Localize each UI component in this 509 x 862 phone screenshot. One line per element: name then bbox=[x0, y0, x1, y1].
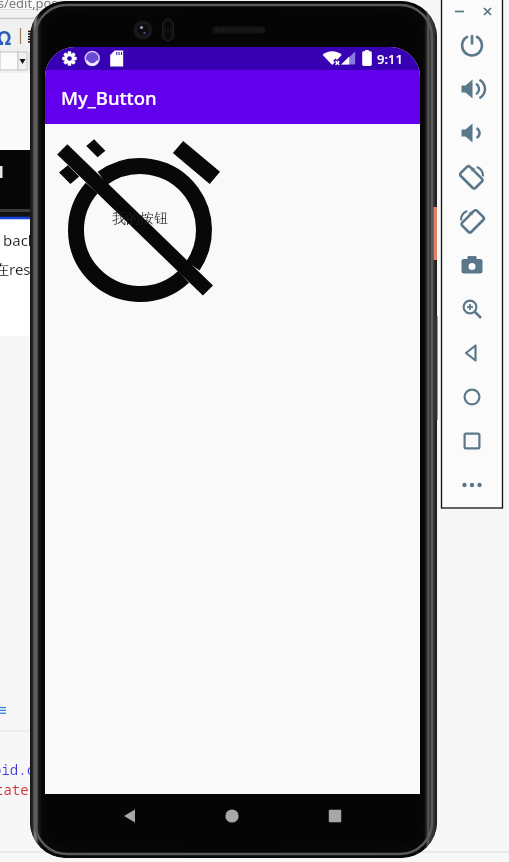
button[interactable]: Home bbox=[212, 796, 252, 836]
button[interactable]: Volume up bbox=[460, 77, 484, 101]
button[interactable]: Overview bbox=[460, 429, 484, 453]
button[interactable]: Back bbox=[109, 796, 149, 836]
staticText: ts/edit,pos bbox=[0, 0, 58, 12]
staticText: tate bbox=[0, 780, 29, 799]
button[interactable]: Volume down bbox=[460, 121, 484, 145]
button[interactable]: Home bbox=[460, 385, 484, 409]
staticText: My_Button bbox=[61, 85, 157, 110]
button[interactable]: Power bbox=[460, 33, 484, 57]
staticText: 9:11 bbox=[377, 50, 403, 68]
staticText: back bbox=[3, 230, 36, 250]
button[interactable]: Rotate right bbox=[460, 209, 484, 233]
button[interactable]: Overview bbox=[315, 796, 355, 836]
button[interactable]: 我的按钮 bbox=[45, 126, 236, 318]
staticText: 我的按钮 bbox=[112, 210, 168, 228]
staticText: oid.c bbox=[0, 760, 35, 779]
staticText: ≡ bbox=[0, 701, 8, 718]
button[interactable]: Rotate left bbox=[460, 165, 484, 189]
staticText: 在res] bbox=[0, 259, 36, 279]
staticText: Ω bbox=[0, 25, 12, 51]
button[interactable]: Screenshot bbox=[460, 253, 484, 277]
button[interactable]: Back bbox=[460, 341, 484, 365]
button[interactable]: More bbox=[460, 473, 484, 497]
button[interactable]: Zoom bbox=[460, 297, 484, 321]
